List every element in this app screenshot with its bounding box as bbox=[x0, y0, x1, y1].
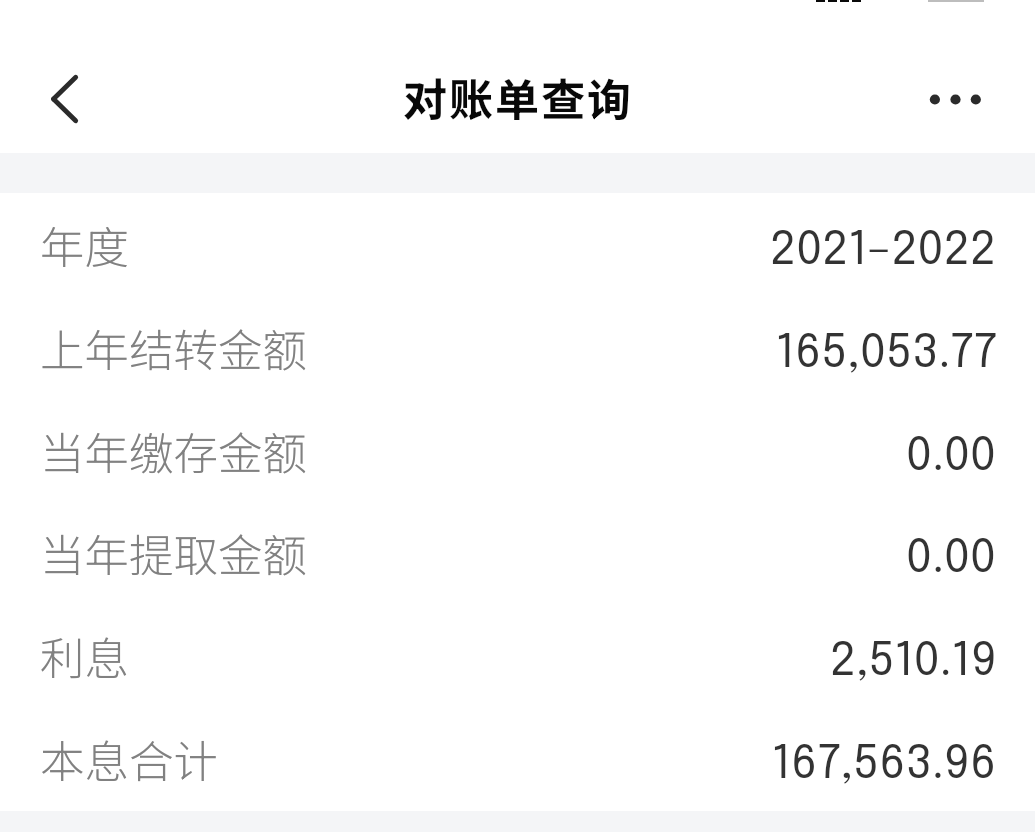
staticText: 年度 bbox=[40, 212, 130, 276]
staticText: 0.00 bbox=[906, 434, 997, 481]
button[interactable]: 本息合计 bbox=[0, 705, 1035, 808]
staticText: 165,053.77 bbox=[776, 331, 997, 378]
button[interactable]: 利息 bbox=[0, 602, 1035, 705]
staticText: 当年缴存金额 bbox=[40, 418, 308, 482]
button[interactable]: 上年结转金额 bbox=[0, 294, 1035, 397]
staticText: 本息合计 bbox=[40, 726, 219, 790]
button[interactable]: 年度 bbox=[0, 191, 1035, 294]
button[interactable]: 当年缴存金额 bbox=[0, 397, 1035, 500]
button[interactable]: 当年提取金额 bbox=[0, 499, 1035, 602]
staticText: 利息 bbox=[40, 623, 130, 687]
button[interactable]: Back bbox=[24, 62, 104, 138]
staticText: 0.00 bbox=[906, 536, 997, 583]
staticText: 2,510.19 bbox=[830, 639, 997, 686]
staticText: 2021–2022 bbox=[770, 228, 997, 275]
staticText: 对账单查询 bbox=[403, 65, 633, 129]
staticText: 当年提取金额 bbox=[40, 520, 308, 584]
staticText: 167,563.96 bbox=[772, 742, 997, 789]
button[interactable]: More options bbox=[900, 64, 1010, 136]
staticText: 上年结转金额 bbox=[40, 315, 308, 379]
